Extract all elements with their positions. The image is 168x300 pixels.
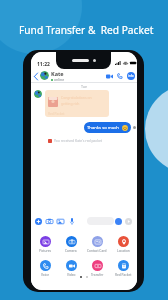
button[interactable]: Congratulations on <box>45 90 109 117</box>
button[interactable]: Voice <box>32 260 58 277</box>
button[interactable]: Transfer <box>84 260 110 277</box>
staticText: Tue <box>31 84 137 89</box>
staticText: Red Packet <box>115 273 132 277</box>
button[interactable]: Send <box>125 218 132 225</box>
button[interactable]: Location <box>110 236 136 253</box>
staticText: Voice <box>41 273 49 277</box>
staticText: Video <box>67 273 76 277</box>
button[interactable]: Video call <box>105 72 113 80</box>
staticText: info <box>128 74 134 78</box>
button[interactable]: Gallery <box>56 217 64 225</box>
button[interactable]: Call <box>116 72 124 80</box>
staticText: Congratulations on <box>61 95 92 100</box>
button[interactable]: Pictures <box>32 236 58 253</box>
staticText: Kate <box>51 70 64 77</box>
staticText: Transfer <box>91 273 104 277</box>
button[interactable]: Camera <box>58 236 84 253</box>
button[interactable]: Back <box>32 72 40 80</box>
staticText: You received Kate's red packet <box>54 138 103 143</box>
staticText: Red Packet <box>48 112 65 116</box>
button[interactable]: Emoji <box>115 218 122 225</box>
staticText: Pictures <box>39 249 51 253</box>
button[interactable]: Contact Card <box>84 236 110 253</box>
staticText: Thanks so much <box>87 125 119 131</box>
staticText: Camera <box>65 249 77 253</box>
button[interactable]: Video <box>58 260 84 277</box>
staticText: 11:22 <box>37 61 50 68</box>
staticText: Contact Card <box>87 249 107 253</box>
button[interactable]: Add <box>34 217 42 225</box>
staticText: Location <box>117 249 130 253</box>
button[interactable]: Thanks so much <box>84 122 131 133</box>
button[interactable]: Camera <box>45 217 53 225</box>
button[interactable]: Info <box>127 72 135 80</box>
button[interactable]: Red Packet <box>110 260 136 277</box>
staticText: online <box>54 77 65 82</box>
staticText: getting rich <box>61 101 80 106</box>
button[interactable]: Voice message <box>68 217 76 225</box>
staticText: Fund Transfer & Red Packet <box>19 23 154 37</box>
